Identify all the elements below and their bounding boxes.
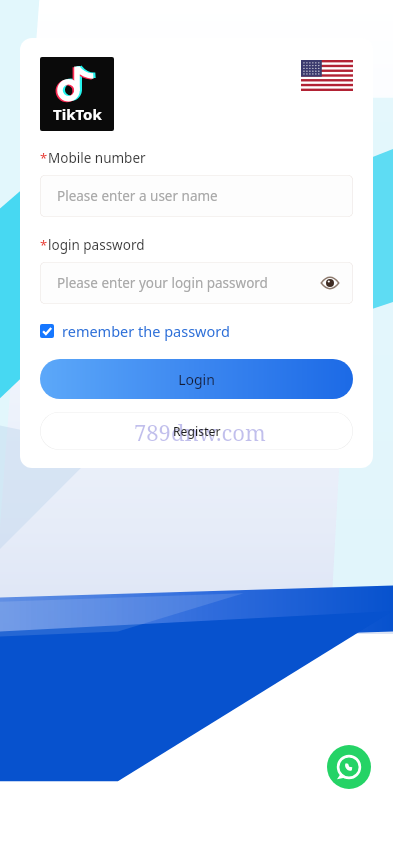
staticText: Please enter a user name	[57, 187, 218, 205]
button[interactable]: Contact us on WhatsApp	[327, 745, 371, 789]
staticText: Register	[173, 423, 221, 439]
staticText: remember the password	[62, 321, 230, 341]
button[interactable]: TikTok	[40, 57, 114, 131]
button[interactable]: Please enter a user name	[40, 175, 353, 217]
button[interactable]: Show password	[320, 273, 340, 293]
button[interactable]: Login	[40, 359, 353, 399]
staticText: Mobile number	[48, 149, 146, 167]
button[interactable]: 789dnw.com	[40, 412, 353, 450]
staticText: login password	[48, 236, 145, 254]
button[interactable]: Select language	[301, 60, 353, 91]
staticText: 789dnw.com	[134, 417, 266, 447]
staticText: TikTok	[53, 104, 102, 124]
staticText: Please enter your login password	[57, 274, 268, 292]
button[interactable]: Please enter your login password	[40, 262, 353, 304]
button[interactable]: remember the password	[40, 321, 230, 341]
staticText: *	[40, 236, 48, 254]
staticText: Login	[178, 370, 215, 389]
staticText: *	[40, 149, 48, 167]
